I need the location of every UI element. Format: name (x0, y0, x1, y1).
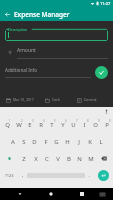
staticText: C (45, 155, 49, 163)
staticText: R (39, 121, 43, 129)
staticText: F (44, 138, 48, 146)
staticText: V (56, 155, 60, 163)
button[interactable]: Additional Info (5, 67, 91, 78)
staticText: Mar 10, 2017 (13, 97, 34, 102)
button[interactable]: A (7, 133, 18, 150)
staticText: J (78, 138, 80, 146)
staticText: 7 (76, 119, 78, 123)
staticText: A (11, 138, 15, 146)
staticText: 8 (87, 119, 89, 123)
button[interactable]: Shift (1, 150, 18, 167)
staticText: K (88, 138, 92, 146)
button[interactable]: J (73, 133, 84, 150)
button[interactable]: . (85, 167, 94, 184)
staticText: H (65, 138, 70, 146)
button[interactable]: Y (57, 116, 68, 133)
staticText: Y (61, 121, 65, 129)
staticText: 2 (21, 119, 23, 123)
button[interactable]: C (41, 150, 52, 167)
button[interactable]: R (35, 116, 46, 133)
button[interactable]: Voice input (103, 108, 110, 115)
staticText: Description (8, 27, 28, 32)
button[interactable]: V (52, 150, 63, 167)
staticText: Amount (17, 47, 36, 54)
staticText: , (22, 172, 24, 179)
staticText: O (93, 121, 98, 129)
button[interactable]: Amount (5, 46, 108, 59)
button[interactable]: I (79, 116, 90, 133)
staticText: N (77, 155, 82, 163)
staticText: G (54, 138, 59, 146)
button[interactable]: Save expense (95, 66, 108, 79)
staticText: U (71, 121, 76, 129)
button[interactable]: Mar 10, 2017 (5, 94, 44, 105)
button[interactable]: S (18, 133, 29, 150)
button[interactable]: N (74, 150, 85, 167)
button[interactable]: W (13, 116, 24, 133)
button[interactable]: Hide keyboard (14, 188, 26, 200)
staticText: X (34, 155, 38, 163)
button[interactable]: Q (1, 116, 13, 133)
button[interactable]: P (101, 116, 112, 133)
staticText: E (28, 121, 32, 129)
staticText: Cash (52, 97, 60, 102)
staticText: M (88, 155, 94, 163)
button[interactable]: , (18, 167, 27, 184)
staticText: B (67, 155, 71, 163)
staticText: 3 (32, 119, 34, 123)
button[interactable]: F (40, 133, 51, 150)
staticText: 9 (98, 119, 100, 123)
button[interactable]: E (24, 116, 35, 133)
staticText: Q (5, 121, 10, 129)
staticText: 11:27 (100, 1, 111, 6)
staticText: 4 (43, 119, 45, 123)
staticText: 1 (9, 119, 11, 123)
button[interactable]: B (63, 150, 74, 167)
staticText: General (84, 97, 97, 102)
button[interactable]: Back (0, 7, 14, 21)
button[interactable]: Recent apps (76, 188, 88, 200)
staticText: D (32, 138, 37, 146)
staticText: Additional Info (5, 67, 37, 73)
staticText: L (99, 138, 103, 146)
button[interactable]: T (46, 116, 57, 133)
button[interactable]: ?123 (1, 167, 18, 184)
button[interactable]: O (90, 116, 101, 133)
button[interactable]: Cash (44, 94, 76, 105)
button[interactable]: M (85, 150, 96, 167)
button[interactable]: Description (5, 26, 108, 41)
staticText: Expense Manager (14, 10, 70, 19)
button[interactable]: U (68, 116, 79, 133)
staticText: T (50, 121, 54, 129)
button[interactable]: K (84, 133, 95, 150)
button[interactable]: Switch keyboard (96, 188, 108, 200)
staticText: ?123 (5, 173, 14, 178)
button[interactable]: Backspace (96, 150, 112, 167)
staticText: I (83, 121, 86, 129)
button[interactable]: Enter (98, 170, 109, 181)
button[interactable]: X (30, 150, 41, 167)
staticText: W (16, 121, 22, 129)
staticText: 0 (109, 119, 111, 123)
button[interactable]: Home (45, 188, 57, 200)
staticText: S (22, 138, 26, 146)
staticText: 5 (54, 119, 56, 123)
staticText: 6 (65, 119, 67, 123)
staticText: . (89, 172, 91, 179)
button[interactable]: H (62, 133, 73, 150)
button[interactable]: G (51, 133, 62, 150)
staticText: P (105, 121, 109, 129)
button[interactable]: L (95, 133, 106, 150)
staticText: Z (22, 155, 26, 163)
button[interactable]: General (76, 94, 108, 105)
button[interactable]: D (29, 133, 40, 150)
button[interactable]: Z (18, 150, 30, 167)
